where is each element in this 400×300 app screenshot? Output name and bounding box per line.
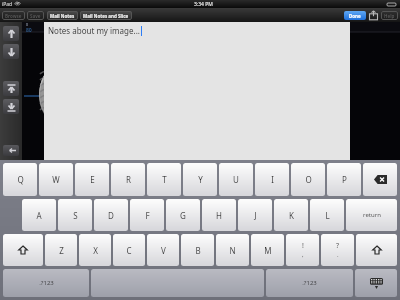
button[interactable]: X	[79, 234, 111, 266]
staticText: P	[342, 174, 347, 185]
button[interactable]: Help	[381, 11, 398, 20]
staticText: M	[264, 245, 272, 256]
button[interactable]: H	[202, 199, 236, 231]
staticText: 96	[62, 27, 68, 34]
button[interactable]: .?123	[3, 269, 89, 297]
staticText: K	[289, 210, 294, 221]
button[interactable]: B	[181, 234, 214, 266]
staticText: .	[337, 251, 339, 259]
staticText: D	[108, 210, 114, 221]
button[interactable]: S	[58, 199, 92, 231]
staticText: 3:34 PM	[194, 1, 213, 8]
button[interactable]: Done	[344, 11, 366, 20]
staticText: Help	[384, 13, 395, 19]
staticText: T	[162, 174, 167, 185]
button[interactable]: return	[346, 199, 397, 231]
staticText: X	[26, 22, 29, 27]
button[interactable]: Mail Notes and Slice	[80, 11, 132, 20]
button[interactable]: .?123	[266, 269, 353, 297]
button[interactable]: T	[147, 163, 181, 196]
staticText: O	[305, 174, 312, 185]
staticText: W	[52, 174, 60, 185]
button[interactable]: M	[251, 234, 284, 266]
staticText: Done	[349, 13, 361, 19]
staticText: 80	[26, 27, 32, 34]
button[interactable]: Next image	[3, 44, 19, 59]
button[interactable]: R	[111, 163, 145, 196]
staticText: iPad	[2, 1, 13, 8]
staticText: E	[90, 174, 95, 185]
staticText: Save	[30, 13, 41, 19]
staticText: L	[325, 210, 330, 221]
button[interactable]: F	[130, 199, 164, 231]
staticText: Browse	[5, 13, 22, 19]
button[interactable]: O	[291, 163, 325, 196]
button[interactable]: Shift	[356, 234, 397, 266]
staticText: N	[229, 245, 236, 256]
button[interactable]: Save	[27, 11, 44, 20]
button[interactable]: U	[219, 163, 253, 196]
button[interactable]: !	[286, 234, 319, 266]
button[interactable]: Shift	[3, 234, 43, 266]
button[interactable]: A	[22, 199, 56, 231]
button[interactable]: Browse	[2, 11, 25, 20]
button[interactable]: J	[238, 199, 272, 231]
staticText: I	[271, 174, 274, 185]
button[interactable]: N	[216, 234, 249, 266]
staticText: Notes about my image...	[48, 25, 140, 36]
button[interactable]: Y	[183, 163, 217, 196]
staticText: .?123	[302, 279, 317, 287]
button[interactable]: First image	[3, 81, 19, 96]
staticText: Z	[59, 245, 64, 256]
staticText: U	[233, 174, 239, 185]
staticText: Mail Notes	[50, 13, 75, 19]
button[interactable]: Q	[3, 163, 37, 196]
staticText: R	[126, 174, 131, 185]
staticText: ?	[336, 241, 340, 251]
staticText: H	[216, 210, 222, 221]
staticText: return	[363, 211, 381, 219]
staticText: Q	[17, 174, 24, 185]
button[interactable]: Share	[369, 10, 378, 20]
button[interactable]: Back	[3, 145, 19, 156]
staticText: ,	[302, 251, 304, 259]
button[interactable]: Notes about my image...	[44, 22, 350, 161]
button[interactable]: K	[274, 199, 308, 231]
button[interactable]: Last image	[3, 99, 19, 114]
staticText: X	[93, 245, 98, 256]
staticText: S	[73, 210, 78, 221]
staticText: .?123	[39, 279, 54, 287]
staticText: Y	[198, 174, 203, 185]
staticText: J	[254, 210, 257, 221]
staticText: A	[36, 210, 42, 221]
button[interactable]: E	[75, 163, 109, 196]
button[interactable]: L	[310, 199, 344, 231]
button[interactable]: I	[255, 163, 289, 196]
button[interactable]: Mail Notes	[47, 11, 78, 20]
button[interactable]: Hide keyboard	[355, 269, 397, 297]
button[interactable]: C	[113, 234, 145, 266]
button[interactable]: Backspace	[363, 163, 397, 196]
button[interactable]	[91, 269, 264, 297]
button[interactable]: V	[147, 234, 179, 266]
staticText: F	[145, 210, 150, 221]
button[interactable]: ?	[321, 234, 354, 266]
button[interactable]: Z	[45, 234, 77, 266]
staticText: G	[180, 210, 186, 221]
button[interactable]: D	[94, 199, 128, 231]
button[interactable]: W	[39, 163, 73, 196]
button[interactable]: Previous image	[3, 26, 19, 41]
staticText: !	[302, 241, 304, 251]
staticText: B	[195, 245, 201, 256]
staticText: V	[161, 245, 166, 256]
staticText: C	[126, 245, 132, 256]
button[interactable]: G	[166, 199, 200, 231]
button[interactable]: P	[327, 163, 361, 196]
staticText: Mail Notes and Slice	[83, 13, 129, 19]
